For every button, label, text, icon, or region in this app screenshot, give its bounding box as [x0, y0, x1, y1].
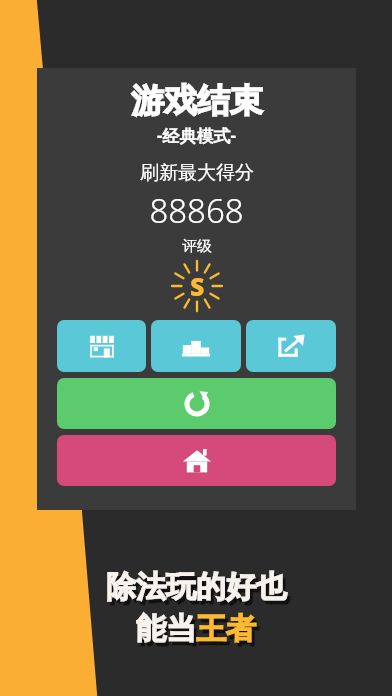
staticText: 游戏结束	[131, 80, 263, 122]
staticText: S	[190, 269, 205, 303]
staticText: 刷新最大得分	[140, 161, 254, 185]
button[interactable]: Shop	[57, 320, 146, 372]
staticText: -经典模式-	[157, 124, 236, 147]
staticText: 评级	[182, 237, 212, 256]
staticText: 除法玩的好也	[106, 568, 286, 606]
button[interactable]: Share	[246, 320, 336, 372]
staticText: 能当王者	[136, 610, 256, 648]
button[interactable]: Leaderboard	[151, 320, 241, 372]
button[interactable]: Restart	[57, 378, 336, 429]
staticText: 88868	[149, 188, 244, 233]
button[interactable]: Home	[57, 435, 336, 486]
